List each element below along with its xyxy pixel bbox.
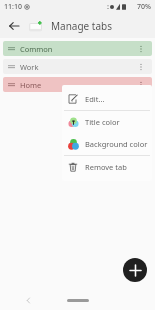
button[interactable]: More options for Work	[135, 61, 147, 73]
staticText: Home	[20, 80, 42, 90]
staticText: 70%	[137, 2, 151, 12]
button[interactable]: Remove tab	[62, 156, 152, 178]
staticText: Remove tab	[85, 162, 127, 172]
staticText: Common	[20, 44, 53, 54]
button[interactable]: More options for Common	[135, 43, 147, 55]
button[interactable]: More options for Home	[135, 79, 147, 91]
button[interactable]: Common	[3, 41, 152, 56]
staticText: Background color	[85, 139, 148, 149]
staticText: Title color	[85, 117, 120, 127]
button[interactable]: Back	[5, 17, 23, 35]
button[interactable]: Edit…	[62, 88, 152, 110]
button[interactable]: Title color	[62, 111, 152, 133]
button[interactable]: Work	[3, 59, 152, 74]
staticText: Manage tabs	[51, 19, 113, 33]
button[interactable]: Background color	[62, 133, 152, 155]
button[interactable]: Home	[3, 77, 152, 92]
button[interactable]: Add tab	[123, 258, 147, 282]
staticText: Work	[20, 62, 39, 72]
staticText: 11:10	[4, 2, 22, 12]
staticText: Edit…	[85, 94, 105, 104]
